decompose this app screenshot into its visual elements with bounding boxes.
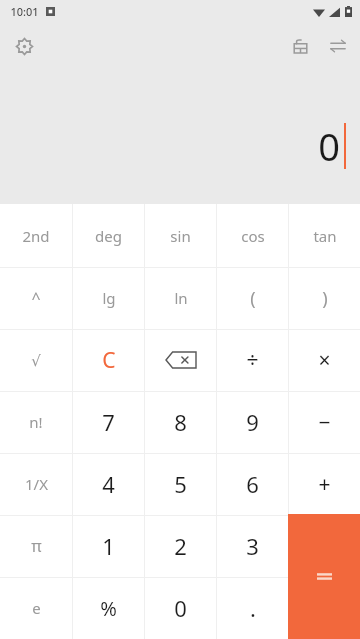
button[interactable]: Settings [5,27,43,65]
staticText: 1/X [25,474,48,494]
button[interactable]: × [289,329,360,391]
button[interactable]: Delete [145,329,216,391]
staticText: 8 [174,407,187,437]
button[interactable]: √ [0,329,72,391]
staticText: ( [250,286,256,311]
button[interactable]: e [0,577,72,639]
staticText: − [318,408,331,437]
staticText: × [318,346,331,375]
button[interactable]: 1 [73,515,144,577]
staticText: π [31,535,42,557]
staticText: e [32,598,41,618]
button[interactable]: ÷ [217,329,288,391]
staticText: 9 [246,407,259,437]
staticText: n! [29,412,43,432]
staticText: 5 [174,469,187,499]
button[interactable]: n! [0,391,72,453]
staticText: ) [322,286,328,311]
staticText: 0 [174,593,187,623]
staticText: √ [31,352,41,369]
staticText: C [102,346,116,375]
button[interactable]: Equals [289,577,360,639]
staticText: 4 [102,469,115,499]
staticText: 2nd [22,226,50,246]
staticText: ÷ [246,346,259,375]
button[interactable]: − [289,391,360,453]
button[interactable]: 5 [145,453,216,515]
staticText: deg [95,226,122,246]
button[interactable]: 2 [145,515,216,577]
button[interactable]: ( [217,267,288,329]
button[interactable]: 4 [73,453,144,515]
staticText: 3 [246,531,259,561]
button[interactable]: 2nd [0,204,72,267]
button[interactable]: % [73,577,144,639]
button[interactable]: lg [73,267,144,329]
staticText: % [100,595,117,622]
button[interactable]: 8 [145,391,216,453]
button[interactable]: Unit converter [319,27,357,65]
button[interactable]: tan [289,204,360,267]
staticText: cos [241,226,265,246]
staticText: 6 [246,469,259,499]
button[interactable]: History [281,27,319,65]
button[interactable]: 3 [217,515,288,577]
button[interactable]: Equals [288,514,360,639]
button[interactable]: 0 [145,577,216,639]
staticText: tan [313,226,337,246]
button[interactable]: 6 [217,453,288,515]
button[interactable]: Equals [289,515,360,577]
staticText: ln [174,288,188,308]
button[interactable]: C [73,329,144,391]
staticText: sin [170,226,191,246]
staticText: lg [102,288,116,308]
button[interactable]: 7 [73,391,144,453]
button[interactable]: cos [217,204,288,267]
button[interactable]: ) [289,267,360,329]
button[interactable]: 1/X [0,453,72,515]
staticText: 1 [102,531,115,561]
staticText: . [250,593,256,623]
button[interactable]: π [0,515,72,577]
staticText: 0 [318,120,340,172]
staticText: + [318,470,331,499]
button[interactable]: 9 [217,391,288,453]
staticText: ^ [31,287,41,309]
button[interactable]: + [289,453,360,515]
button[interactable]: deg [73,204,144,267]
staticText: 2 [174,531,187,561]
button[interactable]: . [217,577,288,639]
button[interactable]: sin [145,204,216,267]
staticText: 10:01 [10,4,39,19]
button[interactable]: ln [145,267,216,329]
staticText: 7 [102,407,115,437]
button[interactable]: ^ [0,267,72,329]
